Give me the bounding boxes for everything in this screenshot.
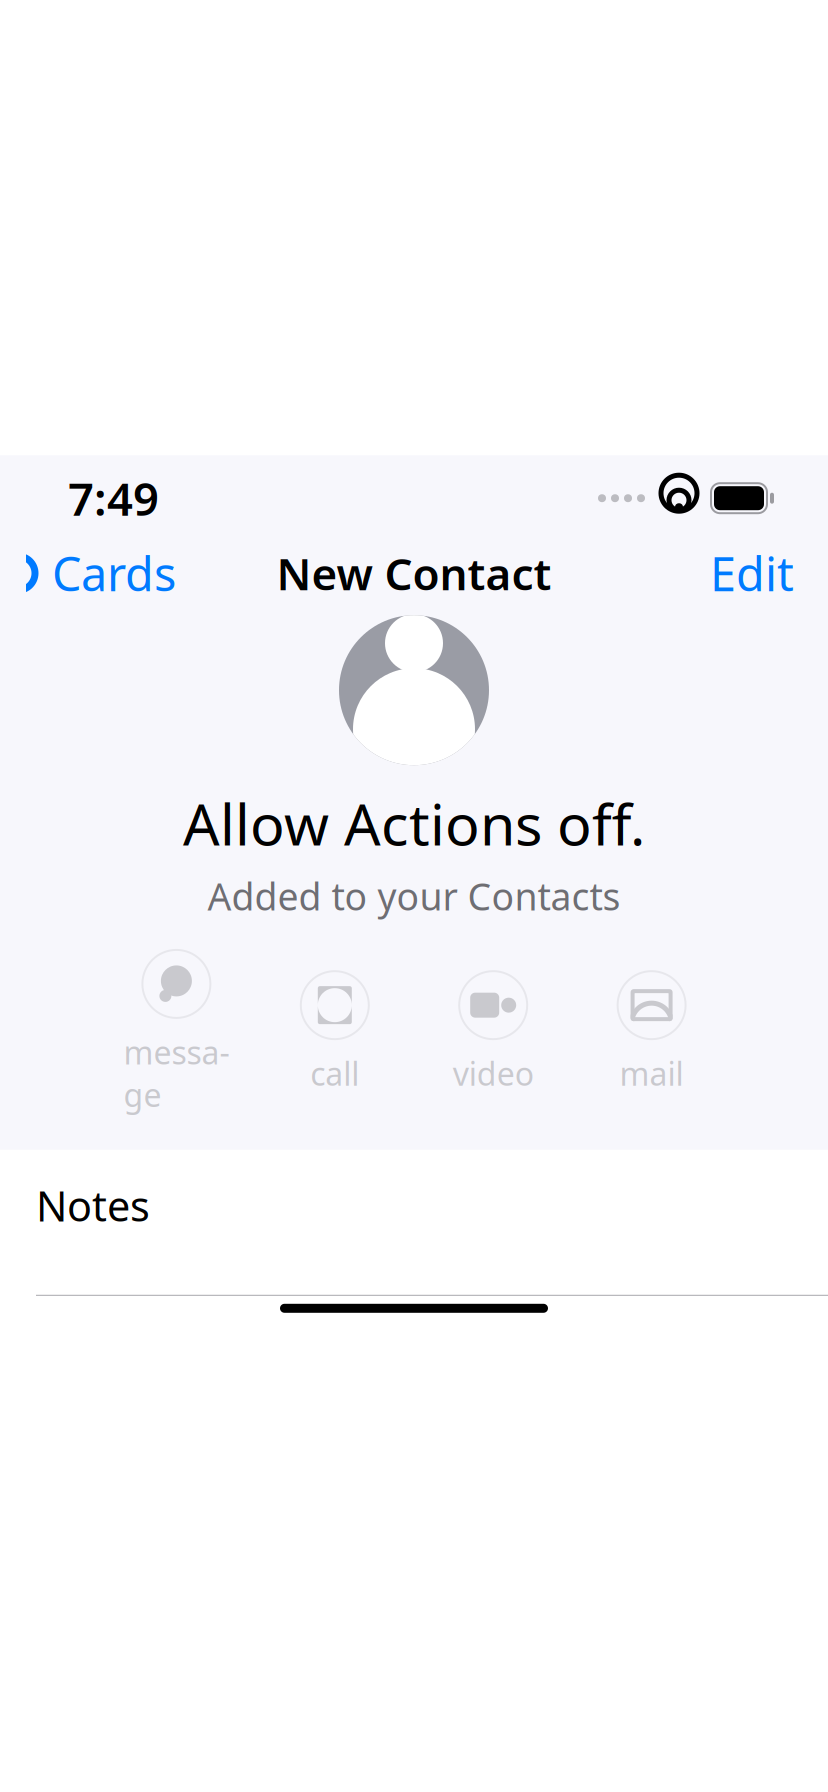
staticText: Notes	[36, 1178, 150, 1233]
button[interactable]: message	[122, 949, 230, 1116]
staticText: message	[123, 1031, 229, 1116]
staticText: video	[453, 1052, 534, 1095]
button[interactable]: Cards	[0, 532, 176, 614]
button[interactable]: video	[439, 970, 547, 1095]
staticText: Added to your Contacts	[207, 871, 620, 921]
button[interactable]: Edit	[710, 532, 828, 614]
staticText: mail	[620, 1052, 684, 1095]
staticText: Edit	[710, 542, 794, 604]
button[interactable]: mail	[598, 970, 706, 1095]
staticText: call	[310, 1052, 359, 1095]
staticText: Allow Actions off.	[183, 785, 645, 861]
staticText: 7:49	[68, 468, 159, 528]
button[interactable]: call	[281, 970, 389, 1095]
staticText: Cards	[52, 542, 176, 604]
staticText: New Contact	[276, 544, 551, 602]
